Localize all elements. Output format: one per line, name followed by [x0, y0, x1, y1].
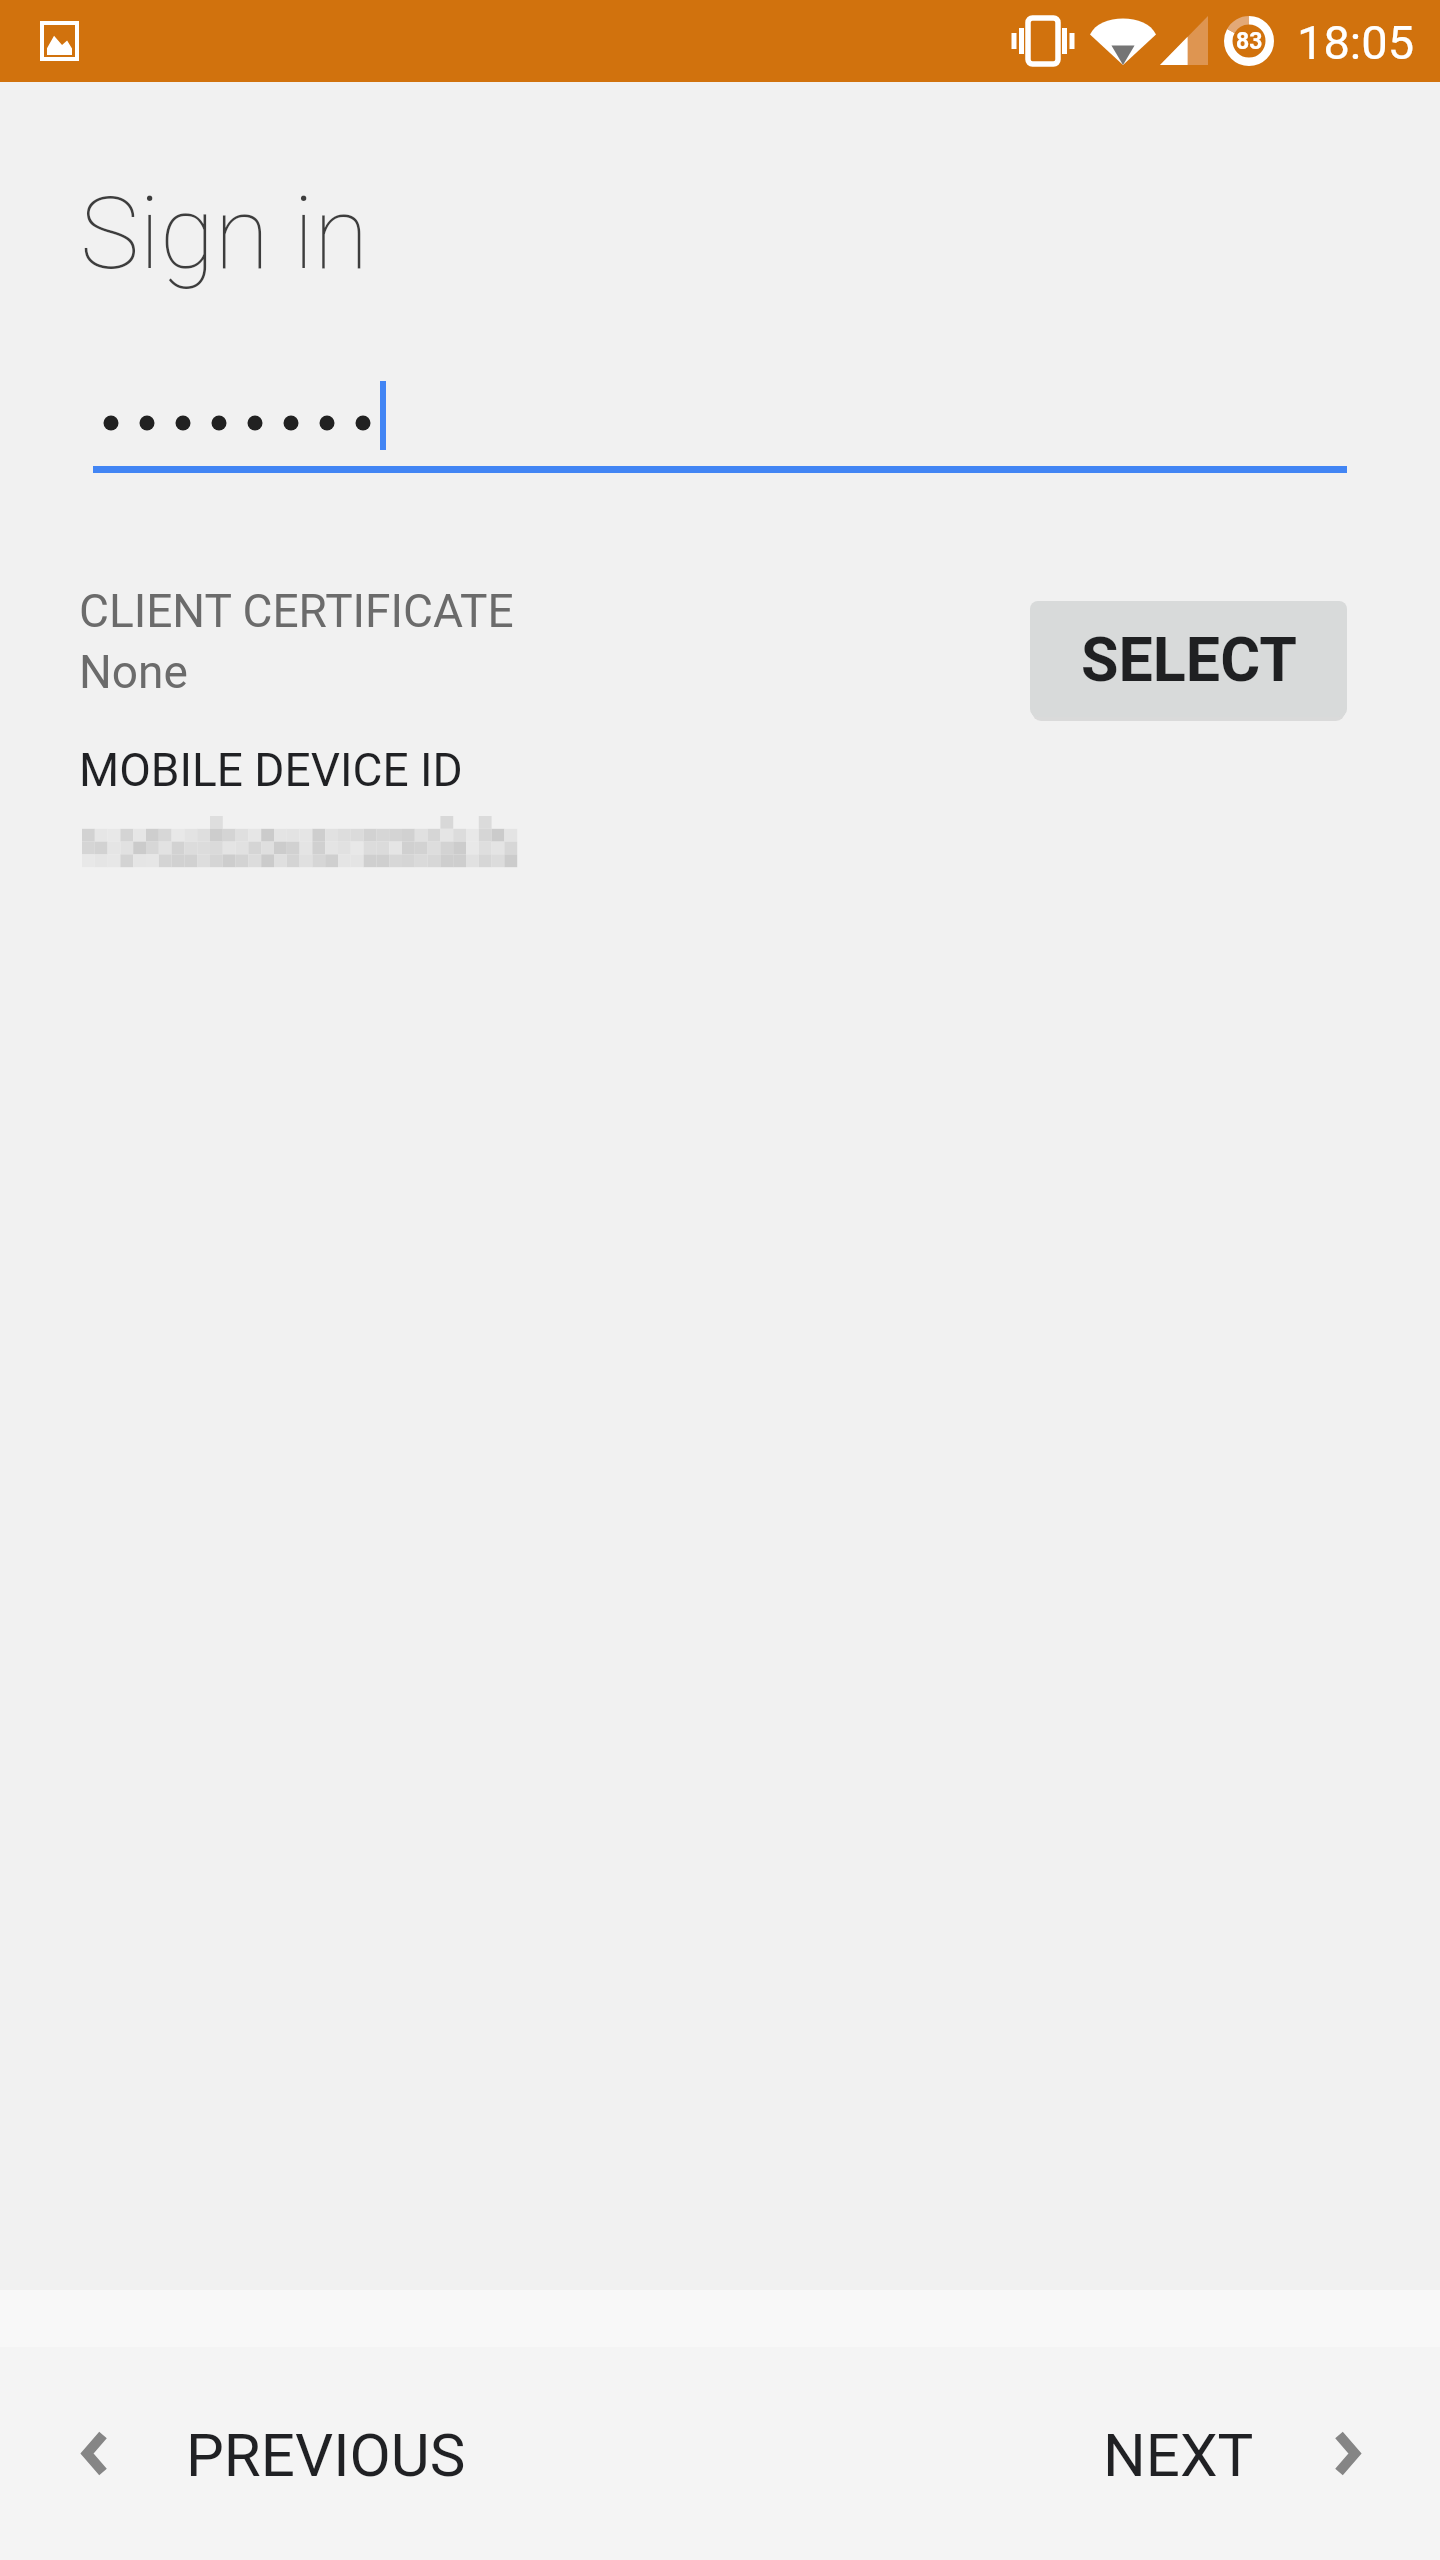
staticText: 18:05 — [1297, 15, 1415, 70]
staticText: MOBILE DEVICE ID — [79, 743, 463, 797]
staticText: PREVIOUS — [186, 2420, 466, 2490]
button[interactable]: PREVIOUS — [42, 2390, 506, 2520]
staticText: SELECT — [1081, 624, 1297, 695]
staticText: Sign in — [80, 175, 369, 292]
staticText: NEXT — [1103, 2420, 1254, 2490]
button[interactable]: NEXT — [1063, 2390, 1400, 2520]
staticText: 83 — [1236, 28, 1263, 55]
other: Screenshot captured — [40, 21, 79, 61]
button[interactable]: Password — [93, 370, 1347, 480]
button[interactable]: SELECT — [1030, 601, 1347, 717]
staticText: CLIENT CERTIFICATE — [79, 584, 514, 638]
staticText: None — [79, 645, 188, 699]
